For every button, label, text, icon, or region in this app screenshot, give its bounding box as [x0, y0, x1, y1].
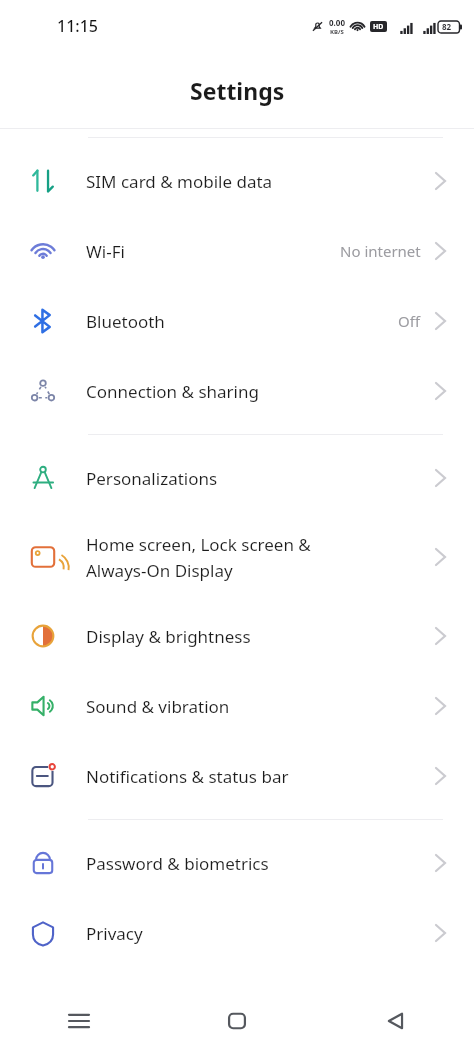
staticText: Privacy	[86, 922, 435, 945]
staticText: HD	[373, 22, 384, 32]
staticText: Off	[398, 311, 421, 331]
staticText: Sound & vibration	[86, 695, 435, 718]
button[interactable]: Back	[316, 990, 474, 1052]
staticText: Personalizations	[86, 467, 435, 490]
staticText: Bluetooth	[86, 310, 398, 333]
staticText: Connection & sharing	[86, 380, 435, 403]
staticText: Home screen, Lock screen & Always-On Dis…	[86, 533, 435, 582]
staticText: Password & biometrics	[86, 852, 435, 875]
button[interactable]: Privacy	[0, 898, 474, 968]
staticText: Wi-Fi	[86, 240, 340, 263]
staticText: Display & brightness	[86, 625, 435, 648]
button[interactable]: Recents	[0, 990, 158, 1052]
button[interactable]: Home screen, Lock screen & Always-On Dis…	[0, 513, 474, 601]
button[interactable]: SIM card & mobile data	[0, 146, 474, 216]
button[interactable]: Password & biometrics	[0, 828, 474, 898]
staticText: Notifications & status bar	[86, 765, 435, 788]
button[interactable]: Personalizations	[0, 443, 474, 513]
button[interactable]: Connection & sharing	[0, 356, 474, 426]
button[interactable]: Home	[158, 990, 316, 1052]
button[interactable]: Bluetooth	[0, 286, 474, 356]
staticText: KB/S	[330, 28, 344, 36]
staticText: 11:15	[57, 15, 98, 37]
staticText: 0.00	[329, 17, 345, 28]
staticText: SIM card & mobile data	[86, 170, 435, 193]
button[interactable]: Display & brightness	[0, 601, 474, 671]
button[interactable]: Notifications & status bar	[0, 741, 474, 811]
button[interactable]: Sound & vibration	[0, 671, 474, 741]
staticText: Settings	[190, 75, 285, 106]
staticText: 82	[442, 21, 452, 32]
button[interactable]: Wi-Fi	[0, 216, 474, 286]
staticText: No internet	[340, 241, 421, 261]
